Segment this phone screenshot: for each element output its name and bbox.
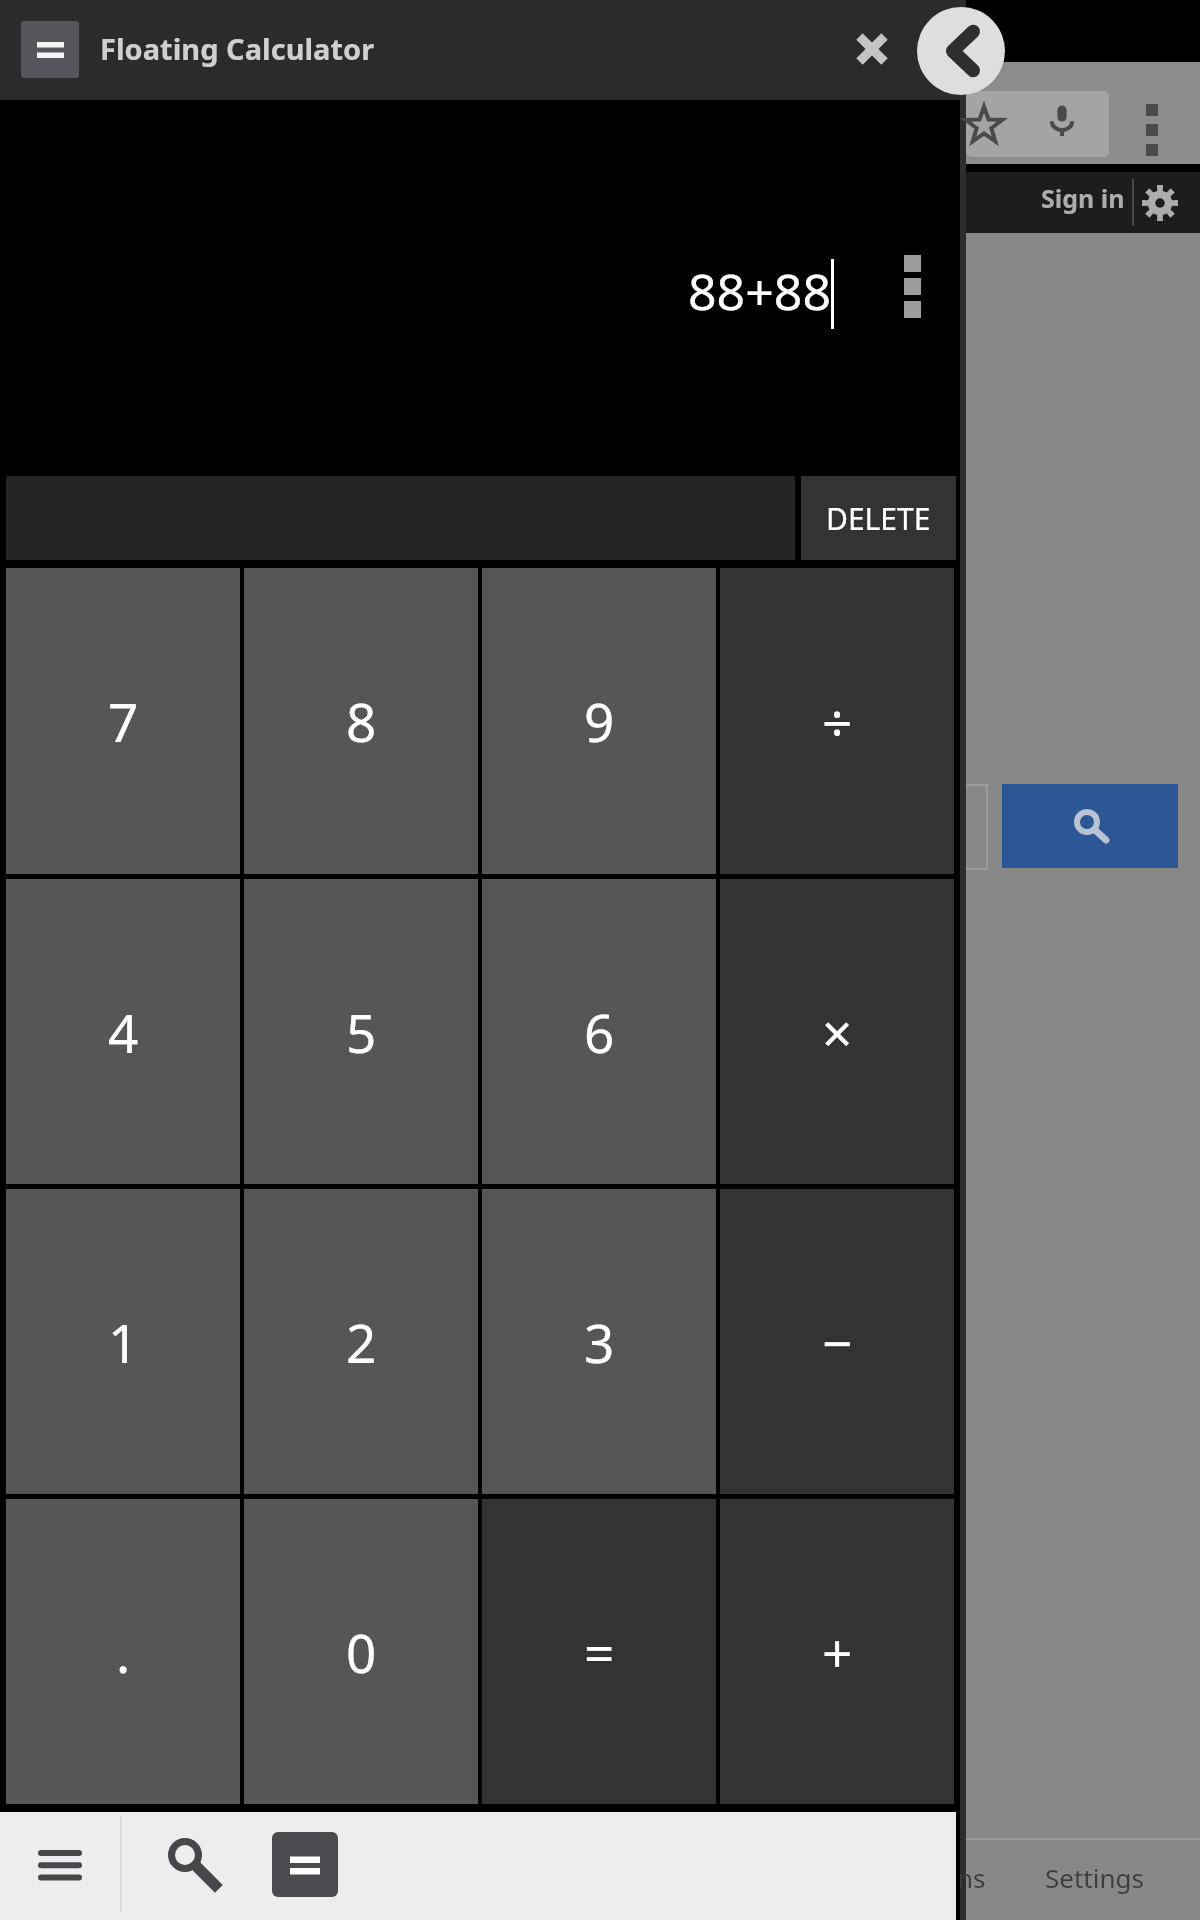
button[interactable]: Search [1002, 784, 1178, 868]
staticText: = [584, 1616, 615, 1688]
button[interactable]: 9 [482, 568, 716, 874]
staticText: ÷ [822, 685, 853, 757]
staticText: 0 [346, 1616, 377, 1688]
button[interactable]: 1 [6, 1189, 240, 1494]
button[interactable]: Close [832, 9, 912, 89]
button[interactable]: Menu [8, 1816, 112, 1916]
button[interactable]: = [482, 1499, 716, 1804]
button[interactable]: − [720, 1189, 954, 1494]
button[interactable]: Back [917, 7, 1005, 95]
button[interactable]: × [720, 879, 954, 1184]
button[interactable]: 2 [244, 1189, 478, 1494]
button[interactable]: Calculator menu [21, 21, 79, 78]
staticText: 9 [584, 685, 615, 757]
staticText: 2 [346, 1306, 377, 1378]
staticText: 3 [584, 1306, 615, 1378]
staticText: ns [957, 1860, 986, 1895]
button[interactable]: + [720, 1499, 954, 1804]
button[interactable]: DELETE [801, 476, 956, 560]
staticText: 8 [346, 685, 377, 757]
staticText: Settings [1045, 1860, 1144, 1895]
staticText: 4 [108, 996, 139, 1068]
button[interactable]: 0 [244, 1499, 478, 1804]
staticText: − [822, 1306, 853, 1378]
button[interactable]: 8 [244, 568, 478, 874]
staticText: 6 [584, 996, 615, 1068]
button[interactable]: ÷ [720, 568, 954, 874]
staticText: 7 [108, 685, 139, 757]
staticText: 88+88 [688, 257, 831, 325]
button[interactable]: 5 [244, 879, 478, 1184]
staticText: × [822, 996, 853, 1068]
button[interactable]: 3 [482, 1189, 716, 1494]
staticText: 5 [346, 996, 377, 1068]
staticText: + [822, 1616, 853, 1688]
staticText: 1 [108, 1306, 139, 1378]
button[interactable]: 6 [482, 879, 716, 1184]
button[interactable]: 4 [6, 879, 240, 1184]
button[interactable]: Search [140, 1820, 236, 1908]
staticText: DELETE [826, 498, 931, 539]
button[interactable]: Search box [966, 91, 1109, 157]
staticText: . [116, 1616, 131, 1688]
button[interactable]: Calculator [272, 1832, 338, 1897]
button[interactable]: . [6, 1499, 240, 1804]
staticText: Sign in [1041, 181, 1125, 215]
staticText: Floating Calculator [100, 29, 375, 68]
button[interactable]: 7 [6, 568, 240, 874]
